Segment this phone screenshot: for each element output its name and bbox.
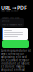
staticText: Convert this web article xyxy=(2,16,19,22)
staticText: into a readable PDF file xyxy=(2,23,22,29)
staticText: Text Sent to PDF xyxy=(1,9,18,12)
button[interactable]: Open converted PDF xyxy=(2,40,29,48)
staticText: URL → PDF xyxy=(1,4,27,11)
staticText: Lorem ipsum dolor sit amet consectetur a… xyxy=(1,49,31,72)
